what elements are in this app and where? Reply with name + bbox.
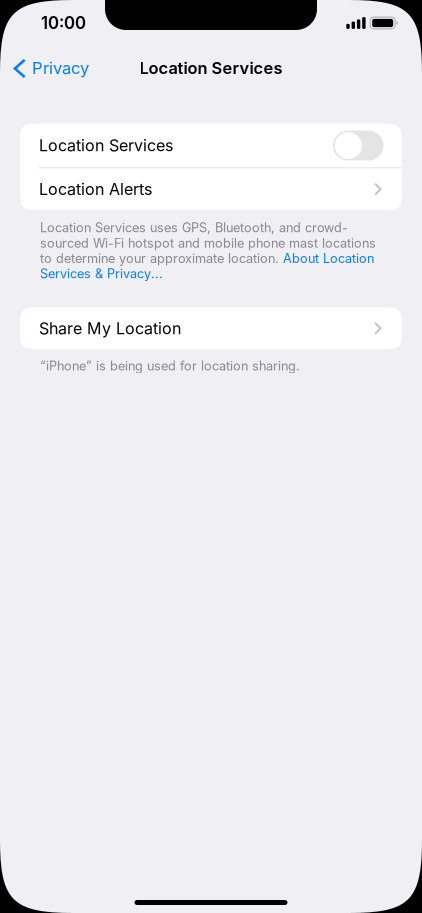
staticText: to determine your approximate location. xyxy=(40,251,279,266)
button[interactable]: Location Services xyxy=(20,124,402,167)
staticText: Privacy xyxy=(32,58,89,78)
staticText: Share My Location xyxy=(39,319,181,338)
staticText: Location Services xyxy=(39,136,173,155)
button[interactable]: Privacy xyxy=(0,49,99,86)
staticText: Location Services xyxy=(139,58,282,78)
staticText: “iPhone” is being used for location shar… xyxy=(40,358,300,373)
button[interactable]: Share My Location xyxy=(20,307,402,349)
staticText: Location Services uses GPS, Bluetooth, a… xyxy=(40,220,348,235)
button[interactable]: Location Alerts xyxy=(20,168,402,210)
staticText: Services & Privacy... xyxy=(40,266,163,281)
staticText: sourced Wi-Fi hotspot and mobile phone m… xyxy=(40,235,376,251)
staticText: 10:00 xyxy=(41,13,86,33)
staticText: Location Alerts xyxy=(39,179,152,199)
staticText: About Location xyxy=(279,251,374,266)
